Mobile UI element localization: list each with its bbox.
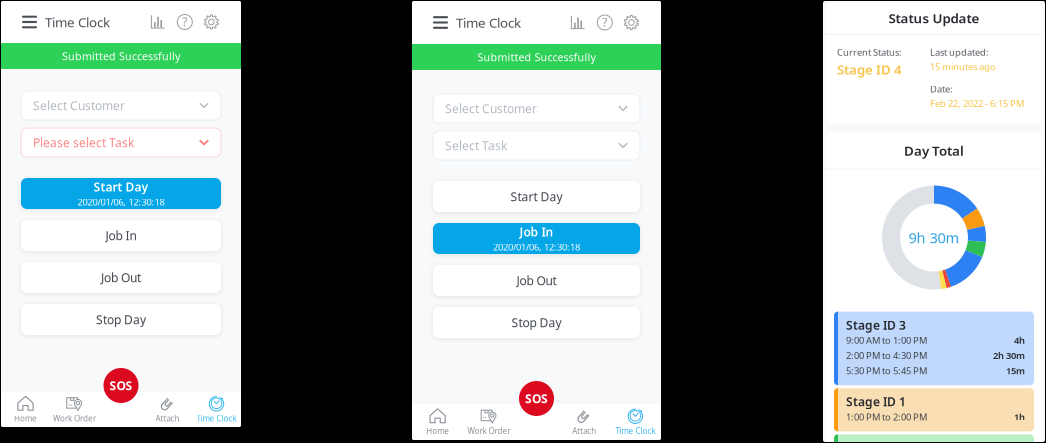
staticText: Feb 22, 2022 - 6:15 PM (930, 97, 1024, 110)
button[interactable]: Attach (558, 404, 610, 440)
staticText: Time Clock (45, 13, 110, 31)
staticText: Start Day (93, 179, 148, 195)
staticText: 9:00 AM to 1:00 PM (846, 334, 927, 346)
button[interactable]: Work Order (463, 404, 514, 440)
staticText: 15m (1006, 364, 1025, 377)
staticText: 1:00 PM to 2:00 PM (846, 411, 927, 423)
staticText: Last updated: (930, 46, 989, 58)
button[interactable]: Stop Day (433, 307, 640, 338)
button[interactable]: SOS (519, 381, 554, 416)
staticText: Stop Day (511, 314, 561, 330)
button[interactable]: Start Day (433, 181, 640, 212)
staticText: Time Clock (196, 413, 236, 424)
staticText: 9h 30m (908, 228, 959, 247)
staticText: Stage ID 3 (846, 317, 906, 333)
staticText: 2020/01/06, 12:30:18 (493, 241, 580, 253)
staticText: Select Customer (445, 100, 537, 116)
staticText: Home (14, 413, 37, 424)
button[interactable]: Menu (433, 6, 521, 39)
staticText: 4h (1014, 334, 1025, 346)
button[interactable]: Select Customer (21, 91, 221, 120)
staticText: Work Order (53, 413, 96, 424)
button[interactable]: Job Out (433, 265, 640, 296)
button[interactable]: Help (175, 9, 195, 35)
button[interactable]: Select Task (433, 131, 640, 160)
staticText: Please select Task (33, 134, 134, 150)
staticText: Status Update (888, 9, 979, 27)
staticText: Day Total (904, 142, 964, 159)
button[interactable]: Settings (621, 9, 642, 36)
button[interactable]: Home (1, 392, 50, 427)
button[interactable]: Settings (201, 8, 222, 36)
staticText: Job Out (101, 269, 141, 285)
staticText: Current Status: (837, 46, 902, 58)
staticText: Stage ID 2 (846, 440, 906, 443)
staticText: Select Task (445, 137, 507, 153)
staticText: 1h (1014, 411, 1025, 423)
button[interactable]: SOS (103, 368, 138, 403)
staticText: Job In (105, 227, 136, 243)
button[interactable]: Job In (433, 223, 640, 254)
staticText: Stage ID 4 (837, 60, 902, 78)
staticText: Start Day (510, 188, 562, 204)
staticText: 2h 30m (993, 349, 1025, 362)
staticText: 15 minutes ago (930, 60, 996, 73)
staticText: Date: (930, 83, 953, 95)
staticText: Attach (155, 413, 179, 424)
staticText: 2020/01/06, 12:30:18 (77, 196, 164, 208)
button[interactable]: Menu (22, 5, 110, 39)
staticText: Attach (572, 426, 596, 436)
button[interactable]: Job In (21, 220, 221, 251)
button[interactable]: Stop Day (21, 304, 221, 335)
button[interactable]: Please select Task (21, 128, 221, 157)
button[interactable]: Work Order (50, 392, 99, 427)
button[interactable]: Job Out (21, 262, 221, 293)
button[interactable]: Time Clock (192, 392, 241, 427)
button[interactable]: Reports (568, 9, 589, 36)
button[interactable]: Time Clock (610, 404, 661, 440)
staticText: SOS (109, 377, 132, 393)
staticText: Time Clock (615, 426, 655, 436)
staticText: Submitted Successfully (62, 49, 180, 63)
staticText: Submitted Successfully (477, 50, 595, 64)
button[interactable]: Select Customer (433, 94, 640, 123)
button[interactable]: Reports (148, 8, 169, 35)
staticText: Stop Day (96, 311, 146, 327)
button[interactable]: Start Day (21, 178, 221, 209)
staticText: Job In (519, 224, 553, 240)
button[interactable]: Help (595, 9, 615, 35)
staticText: Time Clock (456, 14, 521, 31)
staticText: Select Customer (33, 97, 125, 113)
staticText: ? (602, 14, 607, 30)
button[interactable]: Attach (143, 392, 192, 427)
button[interactable]: Home (412, 404, 463, 440)
staticText: SOS (525, 390, 548, 406)
staticText: 2:00 PM to 4:30 PM (846, 349, 927, 362)
staticText: 5:30 PM to 5:45 PM (846, 364, 927, 377)
staticText: ? (182, 13, 187, 29)
staticText: Home (426, 426, 449, 436)
staticText: Work Order (467, 426, 510, 436)
staticText: Job Out (516, 272, 556, 288)
staticText: Stage ID 1 (846, 394, 906, 410)
